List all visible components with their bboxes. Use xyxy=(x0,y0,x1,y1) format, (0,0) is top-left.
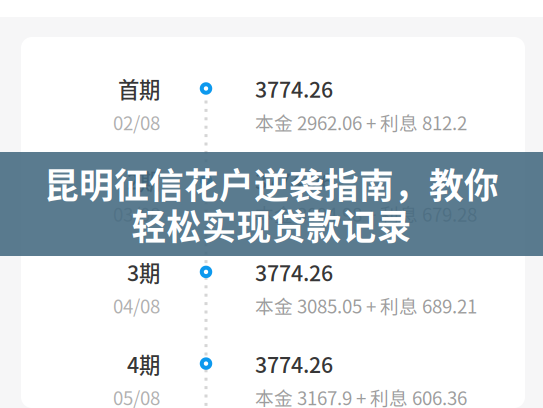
staticText: 02/08 xyxy=(113,108,160,135)
staticText: 3774.26 xyxy=(255,256,333,287)
button[interactable]: 2期 xyxy=(21,164,525,256)
staticText: 本金 3167.9 + 利息 606.36 xyxy=(255,384,467,408)
staticText: 4期 xyxy=(127,348,160,379)
staticText: 3期 xyxy=(127,256,160,287)
staticText: 首期 xyxy=(118,73,160,104)
staticText: 3774.26 xyxy=(255,73,333,104)
staticText: 03/08 xyxy=(113,200,160,227)
staticText: 本金 3085.05 + 利息 689.21 xyxy=(255,292,477,319)
staticText: 05/08 xyxy=(113,384,160,408)
button[interactable]: 4期 xyxy=(21,348,525,408)
button[interactable]: 首期 xyxy=(21,72,525,164)
staticText: 3774.26 xyxy=(255,165,333,196)
button[interactable]: 3期 xyxy=(21,256,525,348)
staticText: 3774.26 xyxy=(255,348,333,379)
staticText: 昆明征信花户逆袭指南，教你 xyxy=(44,158,499,208)
staticText: 轻松实现贷款记录 xyxy=(131,199,411,250)
staticText: 2期 xyxy=(127,165,160,196)
staticText: 04/08 xyxy=(113,292,160,319)
staticText: 本金 2962.06 + 利息 812.2 xyxy=(255,108,467,135)
staticText: 本金 3094.98 + 利息 679.28 xyxy=(255,200,477,227)
